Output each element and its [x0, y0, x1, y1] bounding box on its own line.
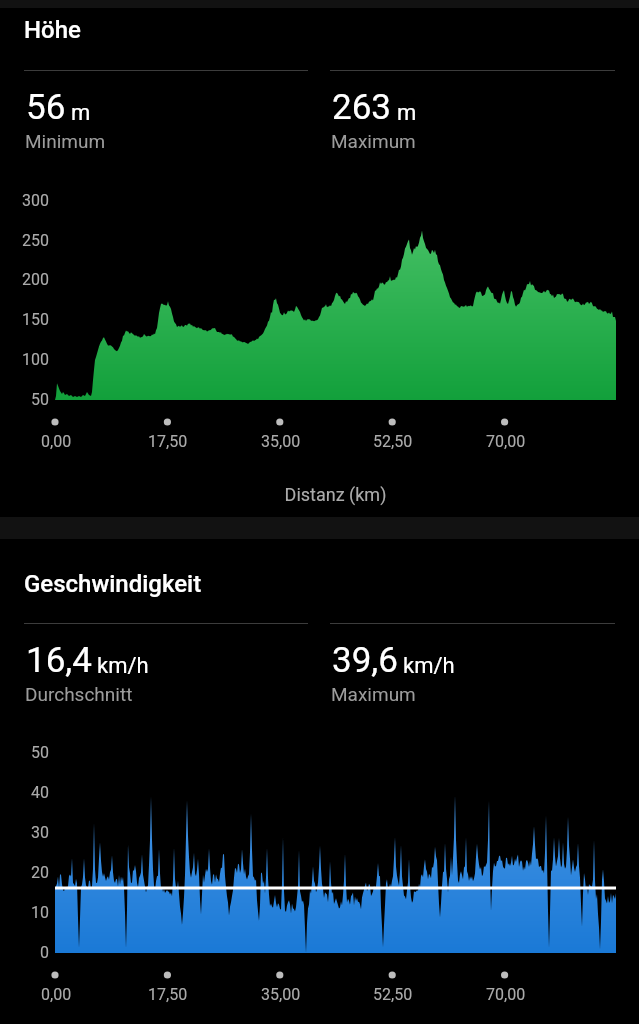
staticText: 56 — [26, 87, 66, 128]
staticText: 250 — [22, 231, 49, 250]
staticText: Durchschnitt — [25, 683, 133, 705]
staticText: 17,50 — [148, 432, 188, 451]
staticText: Maximum — [331, 683, 416, 705]
staticText: 50 — [31, 743, 49, 762]
staticText: km/h — [403, 653, 455, 679]
staticText: 20 — [31, 863, 49, 882]
staticText: km/h — [97, 653, 149, 679]
staticText: m — [71, 100, 91, 126]
staticText: 52,50 — [373, 432, 413, 451]
staticText: Höhe — [24, 16, 81, 44]
staticText: 35,00 — [261, 432, 301, 451]
staticText: 35,00 — [261, 985, 301, 1004]
staticText: 70,00 — [486, 985, 526, 1004]
staticText: Distanz (km) — [16, 484, 639, 505]
staticText: 200 — [22, 270, 49, 289]
staticText: 17,50 — [148, 985, 188, 1004]
staticText: 52,50 — [373, 985, 413, 1004]
staticText: 263 — [332, 87, 392, 128]
staticText: 40 — [31, 783, 49, 802]
button[interactable]: Höhe Diagramm — [0, 8, 639, 517]
staticText: 300 — [22, 191, 49, 210]
staticText: 0,00 — [41, 985, 72, 1004]
staticText: 30 — [31, 823, 49, 842]
staticText: Minimum — [25, 130, 106, 152]
staticText: 150 — [22, 310, 49, 329]
button[interactable]: Geschwindigkeit Diagramm — [0, 539, 639, 1024]
staticText: 100 — [22, 350, 49, 369]
staticText: 0,00 — [41, 432, 72, 451]
staticText: m — [397, 100, 417, 126]
staticText: 50 — [31, 390, 49, 409]
staticText: 0 — [40, 943, 49, 962]
staticText: Geschwindigkeit — [24, 570, 202, 598]
staticText: 39,6 — [332, 640, 398, 681]
staticText: 10 — [31, 903, 49, 922]
staticText: Maximum — [331, 130, 416, 152]
staticText: 70,00 — [486, 432, 526, 451]
staticText: 16,4 — [26, 640, 92, 681]
